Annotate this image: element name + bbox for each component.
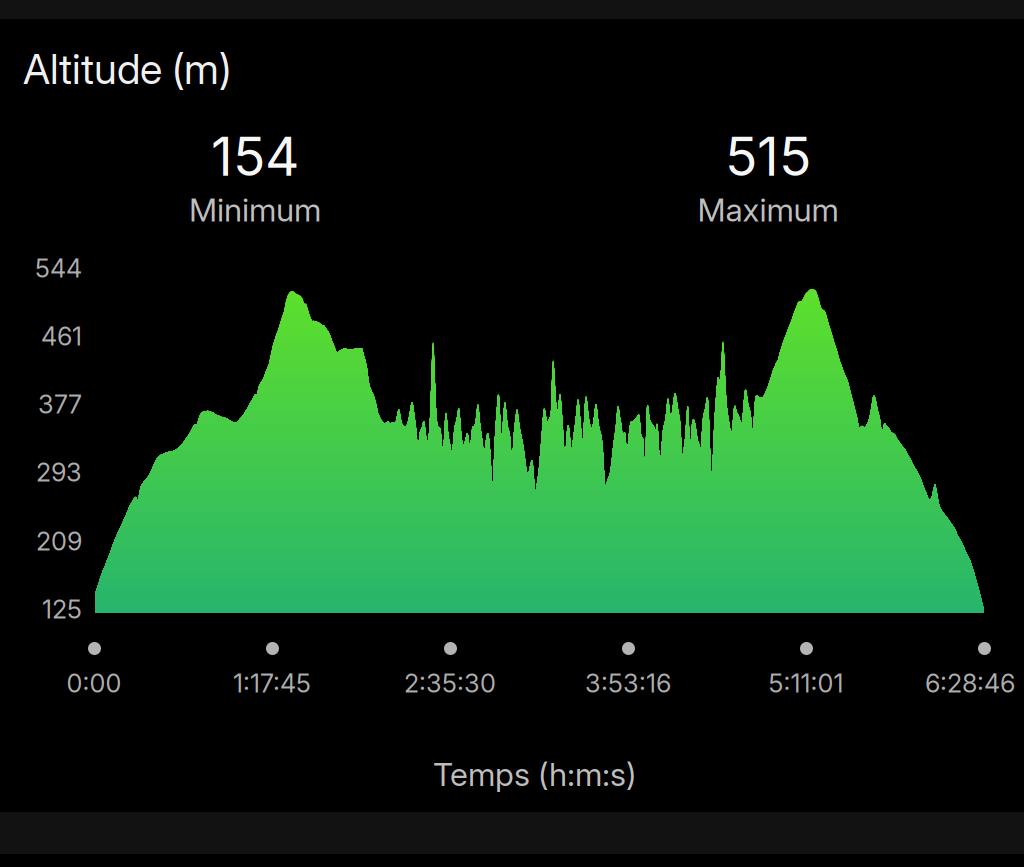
staticText: 461	[41, 321, 82, 352]
staticText: Altitude (m)	[23, 44, 231, 94]
staticText: 6:28:46	[925, 668, 1015, 699]
staticText: 0:00	[66, 668, 121, 699]
button[interactable]: Altitude chart	[95, 280, 984, 613]
staticText: 3:53:16	[585, 668, 671, 699]
staticText: 544	[35, 253, 82, 284]
staticText: Minimum	[189, 190, 321, 229]
button[interactable]: 515	[608, 124, 928, 229]
staticText: 154	[211, 124, 299, 188]
staticText: 5:11:01	[768, 668, 843, 699]
staticText: 515	[725, 124, 811, 188]
button[interactable]: 154	[95, 124, 415, 229]
staticText: 2:35:30	[404, 668, 496, 699]
staticText: Temps (h:m:s)	[433, 755, 637, 794]
staticText: 1:17:45	[233, 668, 311, 699]
staticText: 125	[42, 594, 82, 625]
staticText: Maximum	[697, 190, 838, 229]
staticText: 377	[38, 389, 82, 420]
staticText: 209	[36, 526, 82, 557]
staticText: 293	[36, 457, 82, 488]
